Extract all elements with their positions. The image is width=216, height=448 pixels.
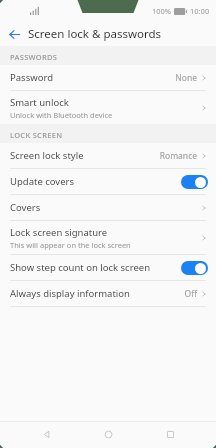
button[interactable]: Recent apps: [154, 421, 186, 448]
button[interactable]: Always display information: [0, 281, 216, 306]
button[interactable]: Back: [30, 421, 62, 448]
button[interactable]: Show step count on lock screen: [0, 255, 216, 280]
button[interactable]: Password: [0, 65, 216, 90]
button[interactable]: Lock screen signature: [0, 221, 216, 254]
button[interactable]: Toggle on: [181, 175, 208, 189]
staticText: Romance: [159, 150, 197, 162]
button[interactable]: Update covers: [0, 169, 216, 194]
staticText: This will appear on the lock screen: [10, 240, 131, 250]
button[interactable]: Smart unlock: [0, 91, 216, 124]
staticText: Unlock with Bluetooth device: [10, 110, 113, 120]
staticText: Password: [10, 71, 53, 84]
staticText: Off: [184, 288, 197, 300]
staticText: None: [175, 72, 197, 84]
staticText: Update covers: [10, 175, 74, 188]
button[interactable]: Covers: [0, 195, 216, 220]
staticText: Show step count on lock screen: [10, 261, 151, 274]
staticText: Lock screen signature: [10, 226, 108, 239]
button[interactable]: Back: [0, 22, 28, 46]
button[interactable]: Screen lock style: [0, 143, 216, 168]
staticText: Screen lock & passwords: [28, 26, 162, 42]
staticText: Smart unlock: [10, 96, 69, 109]
button[interactable]: Home: [92, 421, 124, 448]
staticText: Covers: [10, 201, 41, 214]
button[interactable]: Toggle on: [181, 261, 208, 275]
staticText: LOCK SCREEN: [10, 130, 63, 140]
staticText: 100%: [152, 6, 172, 16]
staticText: Screen lock style: [10, 149, 84, 162]
staticText: PASSWORDS: [10, 52, 58, 62]
staticText: 10:00: [190, 6, 210, 16]
staticText: Always display information: [10, 287, 130, 300]
